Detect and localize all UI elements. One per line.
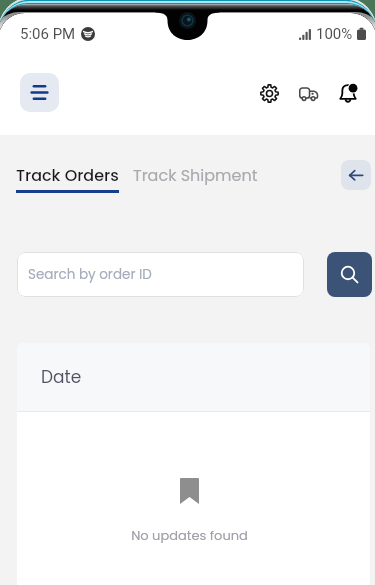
staticText: Search by order ID [28, 265, 152, 284]
button[interactable]: Notifications [330, 75, 366, 111]
staticText: Track Orders [16, 164, 119, 186]
staticText: 100% [316, 25, 353, 43]
button[interactable]: Track Orders [16, 164, 119, 193]
button[interactable]: Track Shipment [133, 164, 258, 193]
staticText: Date [41, 365, 82, 389]
button[interactable]: Back [341, 160, 371, 190]
button[interactable]: Search [327, 252, 372, 297]
staticText: 5:06 PM [20, 25, 76, 43]
button[interactable]: Settings [251, 75, 287, 111]
button[interactable]: Menu [20, 73, 59, 112]
button[interactable]: Search by order ID [17, 252, 304, 297]
button[interactable]: Shipping [290, 75, 326, 111]
staticText: No updates found [131, 526, 248, 544]
staticText: Track Shipment [133, 164, 258, 186]
